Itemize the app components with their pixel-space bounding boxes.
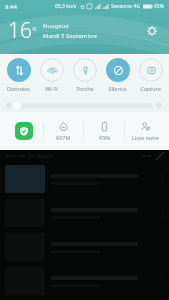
staticText: Plus de 30 vidéos bbox=[5, 152, 54, 160]
button[interactable]: Liste noire bbox=[125, 112, 165, 150]
staticText: 95% bbox=[154, 3, 164, 10]
staticText: Silence bbox=[108, 85, 127, 92]
staticText: ° bbox=[32, 23, 37, 38]
staticText: Wi-Fi bbox=[45, 85, 58, 92]
staticText: Torche bbox=[76, 85, 94, 92]
staticText: 16 bbox=[8, 16, 32, 45]
staticText: 9:44 bbox=[5, 3, 17, 11]
staticText: Capture bbox=[140, 85, 161, 92]
staticText: Données bbox=[7, 85, 30, 92]
button[interactable]: Données bbox=[2, 58, 35, 98]
staticText: Liste noire bbox=[132, 134, 159, 141]
staticText: 65,3 ko/s bbox=[55, 3, 77, 10]
staticText: Mardi 5 Septembre bbox=[43, 32, 97, 40]
staticText: 867M bbox=[56, 134, 71, 141]
button[interactable]: Settings bbox=[143, 22, 161, 40]
staticText: 95% bbox=[99, 134, 110, 141]
button[interactable]: Silence bbox=[101, 58, 134, 98]
button[interactable]: 16 bbox=[8, 16, 161, 45]
button[interactable]: 867M bbox=[44, 112, 83, 150]
button[interactable]: Capture bbox=[134, 58, 167, 98]
button[interactable]: Auto brightness bbox=[155, 101, 163, 109]
button[interactable]: Torche bbox=[68, 58, 101, 98]
staticText: Sensores 4G bbox=[111, 3, 141, 10]
button[interactable]: Security bbox=[4, 112, 43, 150]
button[interactable]: 95% bbox=[84, 112, 124, 150]
button[interactable]: Wi-Fi bbox=[35, 58, 68, 98]
staticText: Nuageux bbox=[43, 22, 69, 30]
